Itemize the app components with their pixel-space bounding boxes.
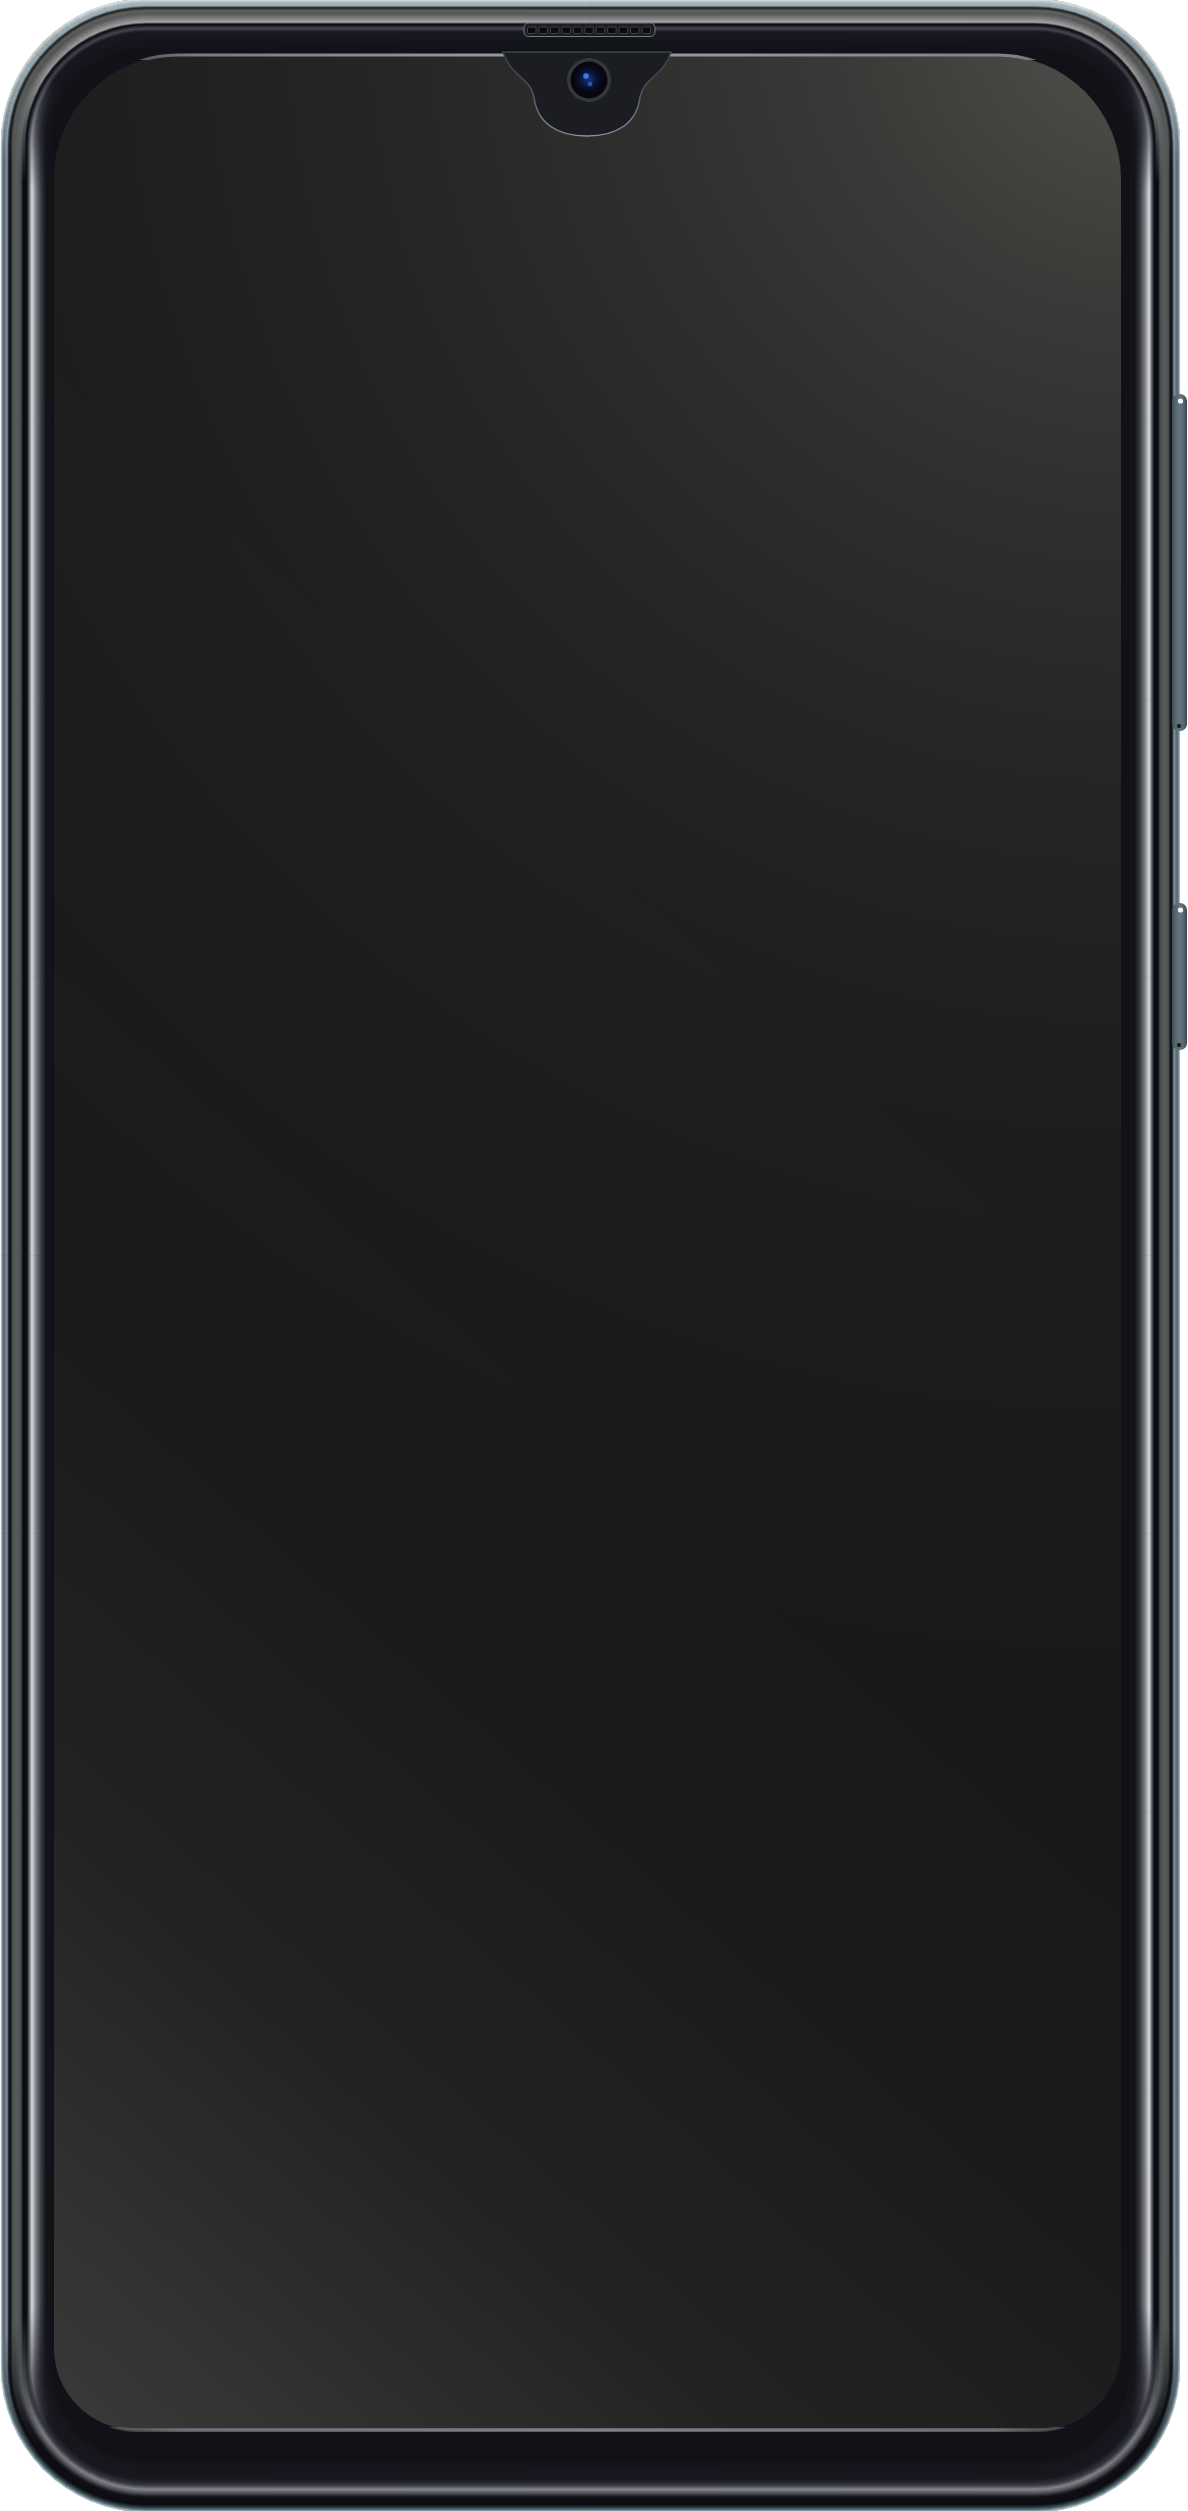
button[interactable]: Smartphone product photo (0, 0, 1188, 2511)
